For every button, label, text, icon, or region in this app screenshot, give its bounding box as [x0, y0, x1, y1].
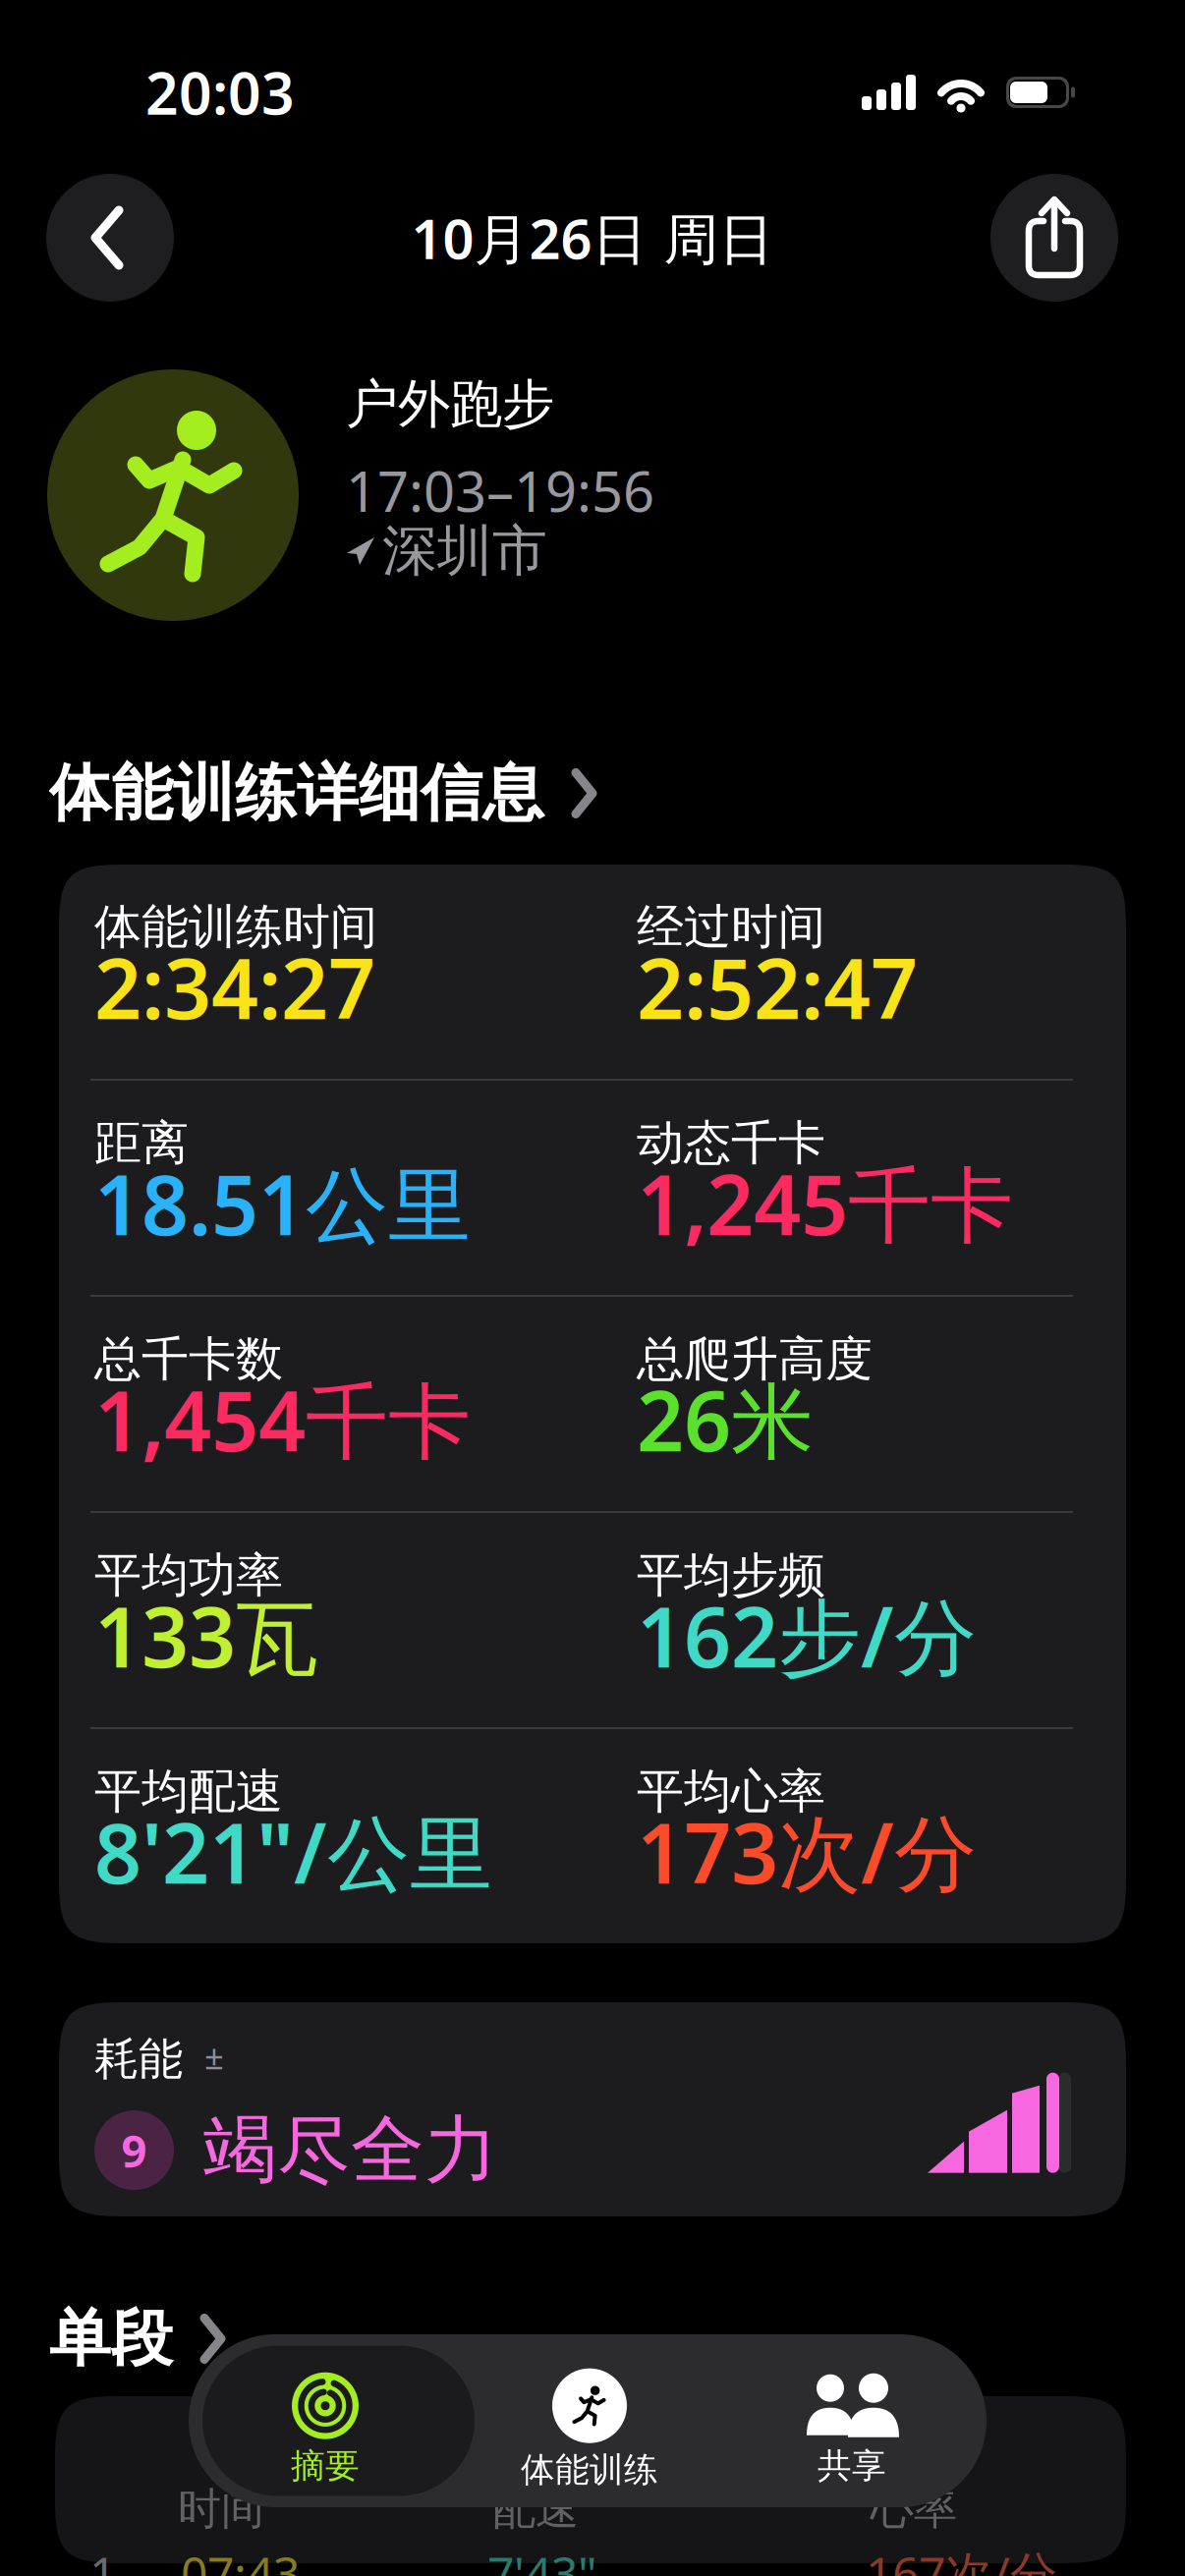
staticText: 摘要	[291, 2445, 360, 2487]
staticText: 共享	[818, 2445, 886, 2487]
button[interactable]: Back	[46, 174, 174, 302]
button[interactable]: 体能训练	[462, 2334, 717, 2507]
staticText: 体能训练时间	[94, 898, 377, 956]
staticText: 总爬升高度	[637, 1330, 873, 1388]
staticText: 1,245千卡	[637, 1148, 1013, 1258]
staticText: 经过时间	[637, 898, 825, 956]
staticText: 20:03	[145, 54, 295, 131]
staticText: ±	[204, 2033, 224, 2079]
staticText: 户外跑步	[346, 372, 554, 436]
staticText: 时间	[178, 2483, 264, 2536]
staticText: 9	[121, 2121, 147, 2180]
staticText: 2:34:27	[94, 932, 375, 1042]
staticText: 平均配速	[94, 1763, 283, 1820]
staticText: 心率	[871, 2483, 957, 2536]
staticText: 7'43"	[487, 2542, 597, 2576]
staticText: 8'21"/公里	[94, 1797, 492, 1906]
staticText: 体能训练详细信息	[49, 756, 544, 831]
staticText: 17:03–19:56	[346, 454, 654, 527]
staticText: 平均心率	[637, 1763, 825, 1820]
staticText: 耗能	[94, 2032, 183, 2086]
staticText: 26米	[637, 1365, 814, 1474]
staticText: 深圳市	[382, 517, 547, 585]
staticText: 1,454千卡	[94, 1365, 471, 1474]
staticText: 总千卡数	[94, 1330, 283, 1388]
staticText: 2:52:47	[637, 932, 918, 1042]
staticText: 162步/分	[637, 1581, 977, 1690]
staticText: 配速	[492, 2483, 579, 2536]
staticText: 18.51公里	[94, 1148, 471, 1258]
staticText: 动态千卡	[637, 1114, 825, 1172]
staticText: 体能训练	[521, 2449, 658, 2491]
staticText: 平均功率	[94, 1546, 283, 1604]
staticText: 平均步频	[637, 1546, 825, 1604]
button[interactable]: 单段	[49, 2301, 229, 2377]
staticText: 单段	[49, 2301, 173, 2377]
button[interactable]: 共享	[717, 2334, 987, 2507]
staticText: 173次/分	[637, 1797, 977, 1906]
button[interactable]: Share	[990, 174, 1118, 302]
button[interactable]: 摘要	[189, 2334, 462, 2507]
staticText: 10月26日 周日	[411, 201, 774, 274]
staticText: 167次/分	[866, 2542, 1057, 2576]
button[interactable]: 体能训练详细信息	[49, 756, 600, 831]
staticText: 竭尽全力	[203, 2105, 498, 2195]
staticText: 距离	[94, 1114, 189, 1172]
staticText: 07:43	[181, 2542, 300, 2576]
staticText: 1	[89, 2542, 116, 2576]
staticText: 133瓦	[94, 1581, 318, 1690]
